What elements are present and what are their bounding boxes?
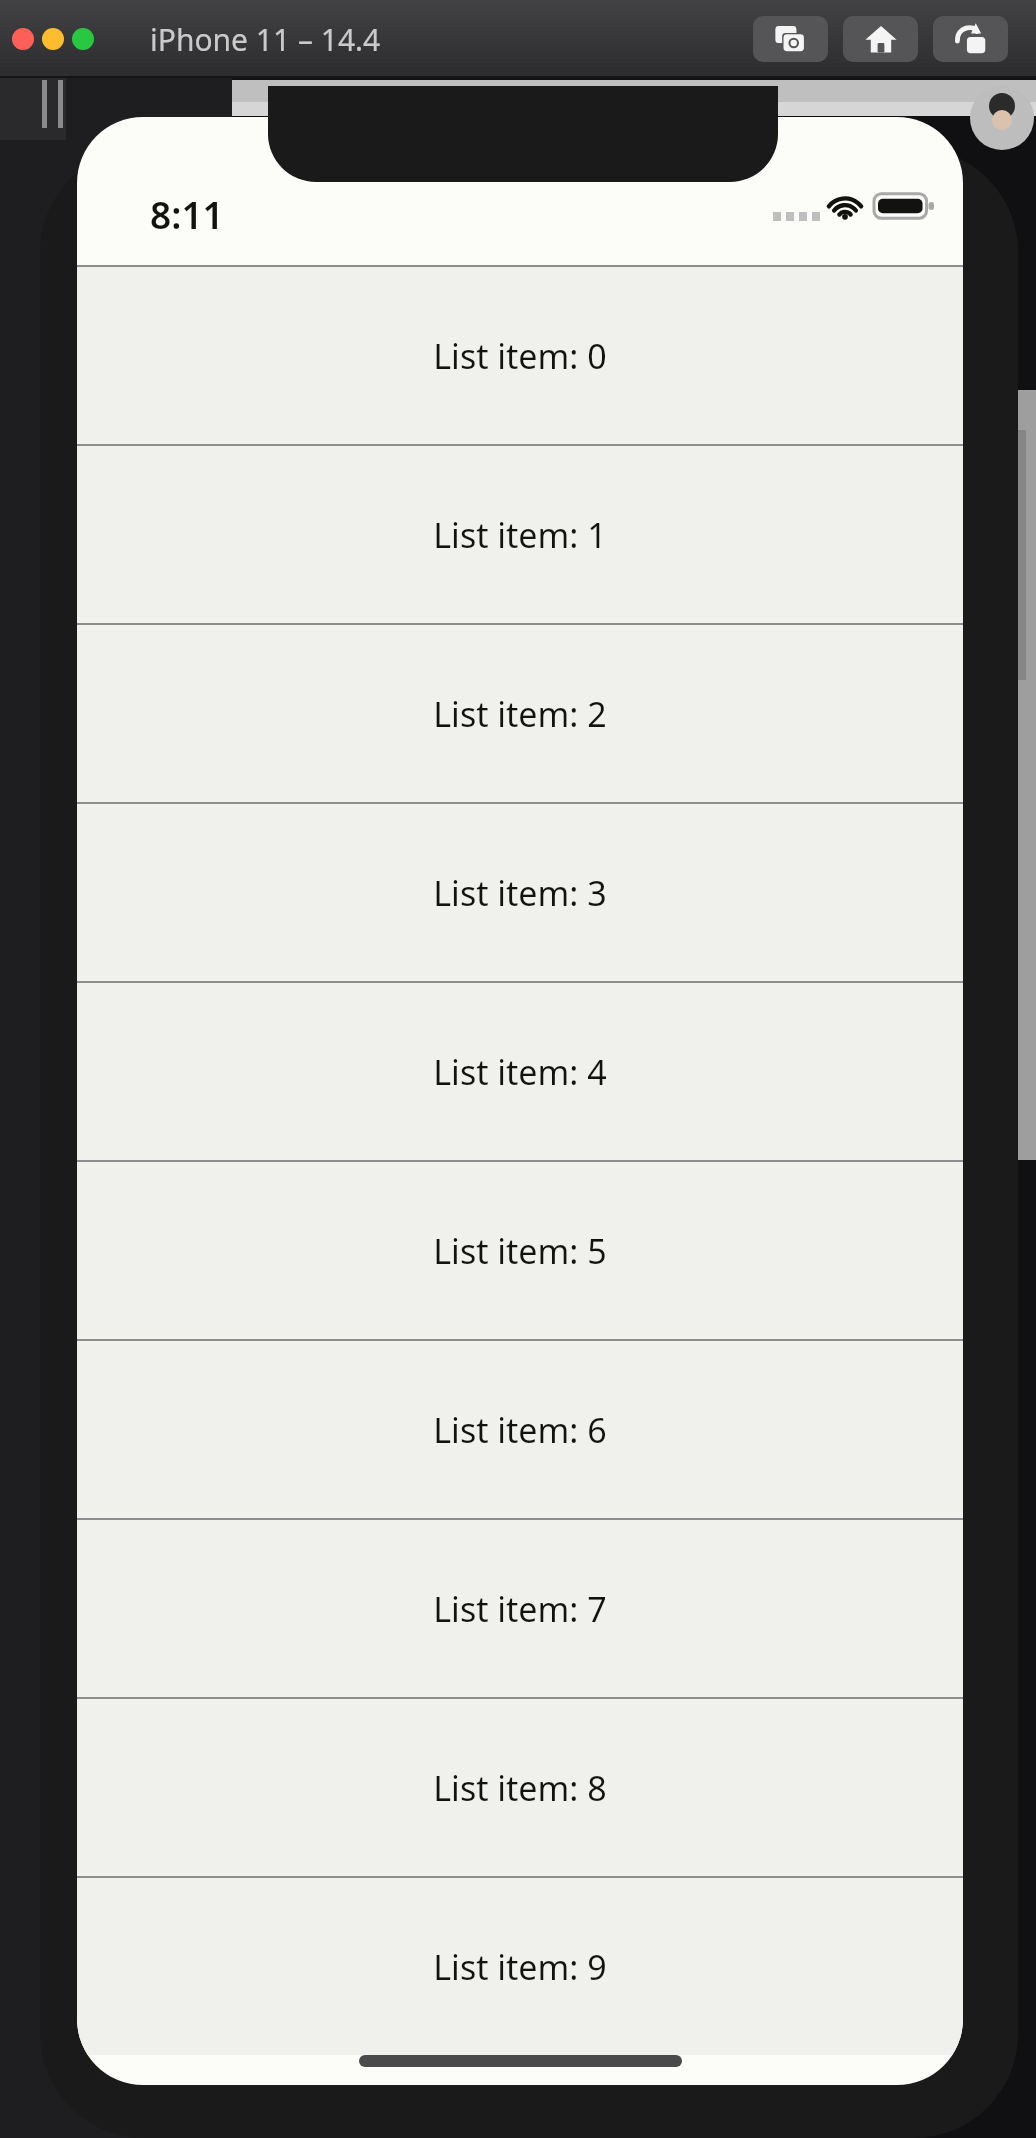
button[interactable]: Home xyxy=(843,16,918,62)
other: Home indicator xyxy=(359,2055,682,2067)
staticText: List item: 6 xyxy=(433,1407,607,1453)
button[interactable]: Take screenshot xyxy=(753,16,828,62)
staticText: List item: 9 xyxy=(433,1944,607,1990)
staticText: 8:11 xyxy=(150,189,224,239)
button[interactable]: Rotate device xyxy=(933,16,1008,62)
button[interactable]: List item: 8 xyxy=(77,1699,963,1876)
button[interactable]: List item: 6 xyxy=(77,1341,963,1518)
staticText: List item: 8 xyxy=(433,1765,607,1811)
staticText: List item: 5 xyxy=(433,1228,607,1274)
button[interactable]: Minimise window xyxy=(42,28,64,50)
staticText: List item: 2 xyxy=(433,691,607,737)
button[interactable]: List item: 3 xyxy=(77,804,963,981)
button[interactable]: Close window xyxy=(12,28,34,50)
button[interactable]: List item: 9 xyxy=(77,1878,963,2055)
button[interactable]: List item: 0 xyxy=(77,267,963,444)
staticText: List item: 3 xyxy=(433,870,607,916)
button[interactable]: List item: 5 xyxy=(77,1162,963,1339)
staticText: List item: 1 xyxy=(433,512,607,558)
button[interactable]: List item: 4 xyxy=(77,983,963,1160)
staticText: List item: 4 xyxy=(433,1049,607,1095)
button[interactable]: List item: 2 xyxy=(77,625,963,802)
button[interactable]: Maximise window xyxy=(72,28,94,50)
button[interactable]: List item: 7 xyxy=(77,1520,963,1697)
button[interactable]: List item: 1 xyxy=(77,446,963,623)
staticText: List item: 0 xyxy=(433,333,607,379)
staticText: List item: 7 xyxy=(433,1586,607,1632)
staticText: iPhone 11 – 14.4 xyxy=(150,19,381,60)
